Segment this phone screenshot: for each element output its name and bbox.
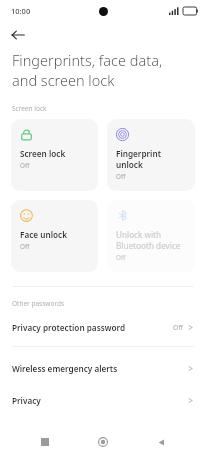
staticText: Privacy protection password bbox=[12, 322, 126, 333]
button[interactable]: Face unlock bbox=[11, 200, 98, 272]
staticText: Unlock with bbox=[116, 229, 162, 240]
button[interactable]: Privacy bbox=[0, 389, 206, 411]
staticText: Fingerprints, face data, bbox=[12, 50, 163, 70]
staticText: Face unlock bbox=[20, 229, 67, 240]
button[interactable]: Wireless emergency alerts bbox=[0, 357, 206, 379]
staticText: Other passwords bbox=[12, 299, 65, 308]
button[interactable]: Recents bbox=[32, 429, 58, 455]
staticText: Off bbox=[116, 172, 126, 181]
button[interactable]: Screen lock bbox=[11, 119, 98, 191]
staticText: 10:00 bbox=[11, 6, 31, 16]
staticText: Wireless emergency alerts bbox=[12, 363, 118, 374]
button[interactable]: Privacy protection password bbox=[0, 316, 206, 338]
button[interactable]: Back bbox=[148, 429, 174, 455]
staticText: Screen lock bbox=[20, 148, 66, 159]
staticText: Off bbox=[173, 323, 183, 332]
staticText: Off bbox=[20, 242, 30, 251]
staticText: unlock bbox=[116, 159, 143, 170]
button[interactable]: Home bbox=[90, 429, 116, 455]
button[interactable]: Unlock with bbox=[107, 200, 195, 272]
button[interactable]: Fingerprint bbox=[107, 119, 195, 191]
staticText: Bluetooth device bbox=[116, 240, 181, 251]
button[interactable]: Back bbox=[7, 24, 29, 46]
staticText: Privacy bbox=[12, 395, 41, 406]
staticText: Screen lock bbox=[12, 104, 47, 113]
staticText: Off bbox=[116, 253, 126, 262]
staticText: and screen lock bbox=[12, 70, 115, 90]
staticText: Off bbox=[20, 161, 30, 170]
staticText: Fingerprint bbox=[116, 148, 161, 159]
